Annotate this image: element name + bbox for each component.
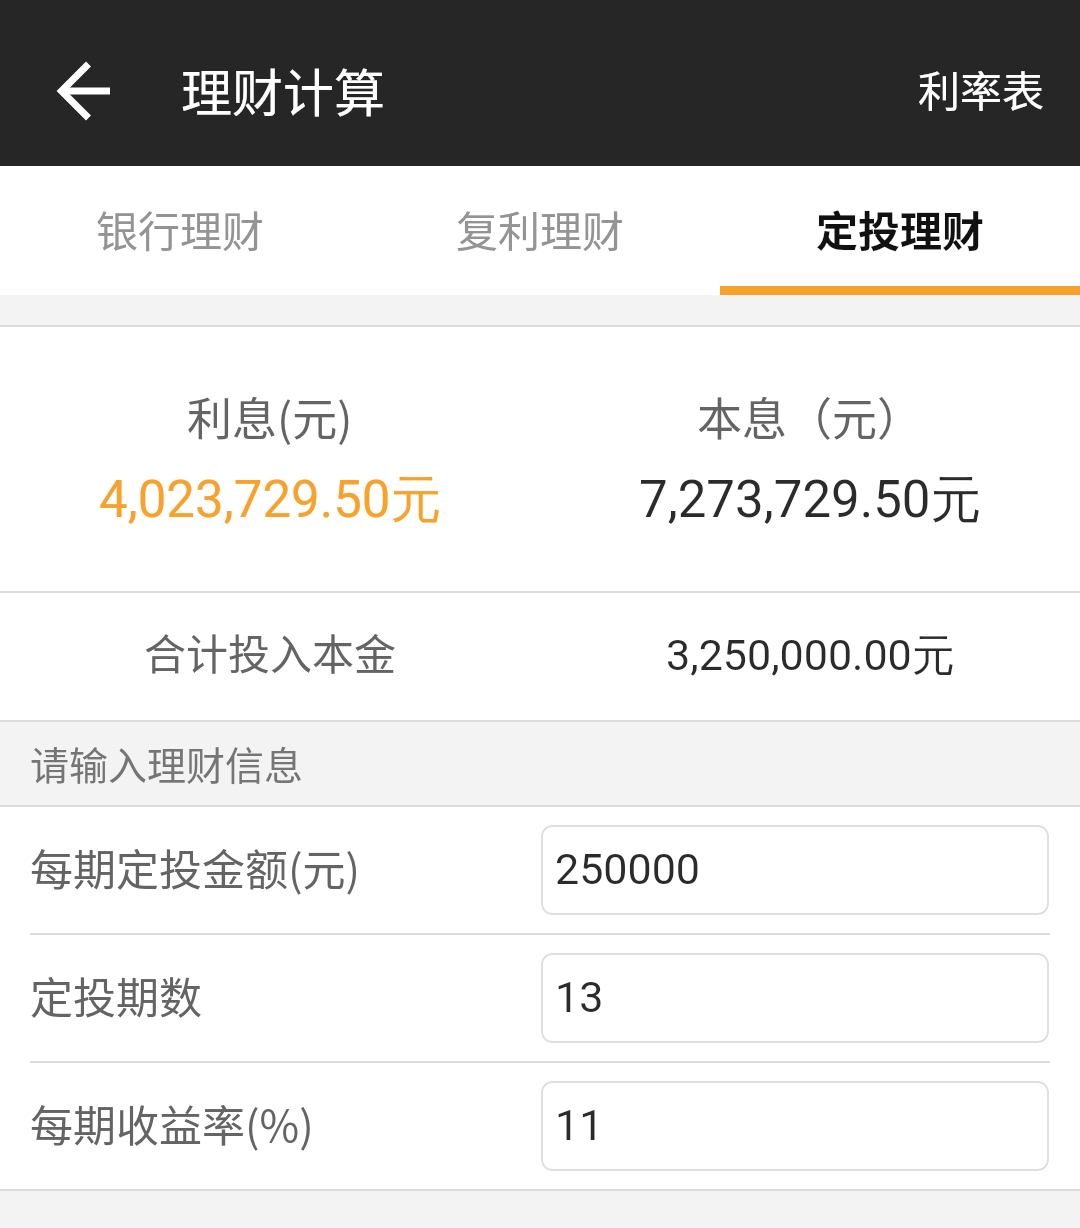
staticText: 每期定投金额(元) [30,836,361,898]
staticText: 250000 [555,844,700,894]
staticText: 利率表 [918,58,1045,119]
staticText: 每期收益率(%) [30,1092,314,1154]
staticText: 7,273,729.50元 [639,468,982,532]
button[interactable]: 复利理财 [360,166,720,295]
staticText: 请输入理财信息 [30,735,304,791]
staticText: 理财计算 [181,53,386,127]
button[interactable]: Back [30,62,138,120]
button[interactable]: 定投期数 [0,935,1080,1061]
button[interactable]: 每期定投金额(元) [0,807,1080,933]
staticText: 银行理财 [96,198,265,259]
staticText: 本息（元） [697,384,923,449]
button[interactable]: 每期收益率(%) [0,1063,1080,1189]
staticText: 定投理财 [816,198,985,259]
button[interactable]: 11 [541,1081,1049,1171]
staticText: 合计投入本金 [144,621,397,682]
button[interactable]: 250000 [541,825,1049,915]
staticText: 13 [555,972,604,1022]
button[interactable]: 利率表 [878,0,1080,166]
button[interactable]: 定投理财 [720,166,1080,295]
button[interactable]: 银行理财 [0,166,360,295]
button[interactable]: 13 [541,953,1049,1043]
staticText: 3,250,000.00元 [666,629,955,683]
staticText: 利息(元) [187,384,353,449]
staticText: 11 [555,1100,604,1150]
staticText: 复利理财 [456,198,625,259]
staticText: 4,023,729.50元 [99,468,442,532]
staticText: 定投期数 [30,964,202,1026]
